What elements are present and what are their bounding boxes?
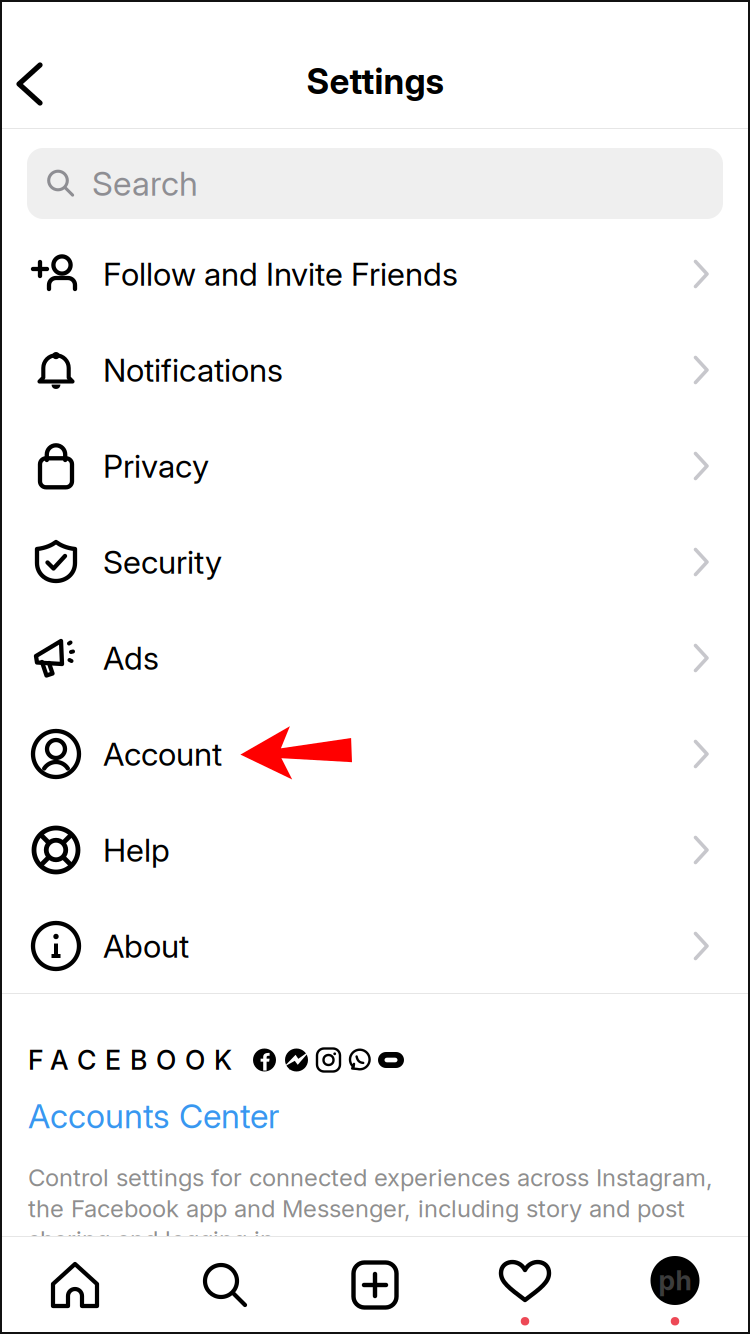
staticText: Search (92, 163, 198, 204)
staticText: Security (103, 543, 222, 581)
staticText: Help (103, 831, 170, 869)
button[interactable]: Privacy (0, 418, 750, 514)
button[interactable]: Account (0, 706, 750, 802)
button[interactable]: Help (0, 802, 750, 898)
button[interactable]: Ads (0, 610, 750, 706)
staticText: Ads (103, 639, 159, 677)
button[interactable]: Notifications (0, 322, 750, 418)
staticText: ph (658, 1264, 691, 1297)
staticText: About (103, 927, 189, 965)
button[interactable]: Home (0, 1236, 150, 1334)
staticText: Control settings for connected experienc… (28, 1163, 713, 1254)
staticText: Notifications (103, 351, 283, 389)
staticText: Follow and Invite Friends (103, 255, 458, 293)
button[interactable]: Activity (450, 1236, 600, 1334)
staticText: Accounts Center (28, 1096, 279, 1136)
button[interactable]: Create (300, 1236, 450, 1334)
button[interactable]: About (0, 898, 750, 994)
button[interactable]: Security (0, 514, 750, 610)
staticText: Privacy (103, 447, 209, 485)
staticText: FACEBOOK (28, 1044, 232, 1076)
button[interactable]: Accounts Center (28, 1072, 722, 1134)
button[interactable]: Profile (600, 1236, 750, 1334)
button[interactable]: Search (150, 1236, 300, 1334)
staticText: Settings (306, 60, 443, 102)
staticText: Account (103, 735, 222, 773)
button[interactable]: Back (0, 46, 68, 122)
button[interactable]: Search (0, 129, 750, 226)
button[interactable]: Follow and Invite Friends (0, 226, 750, 322)
